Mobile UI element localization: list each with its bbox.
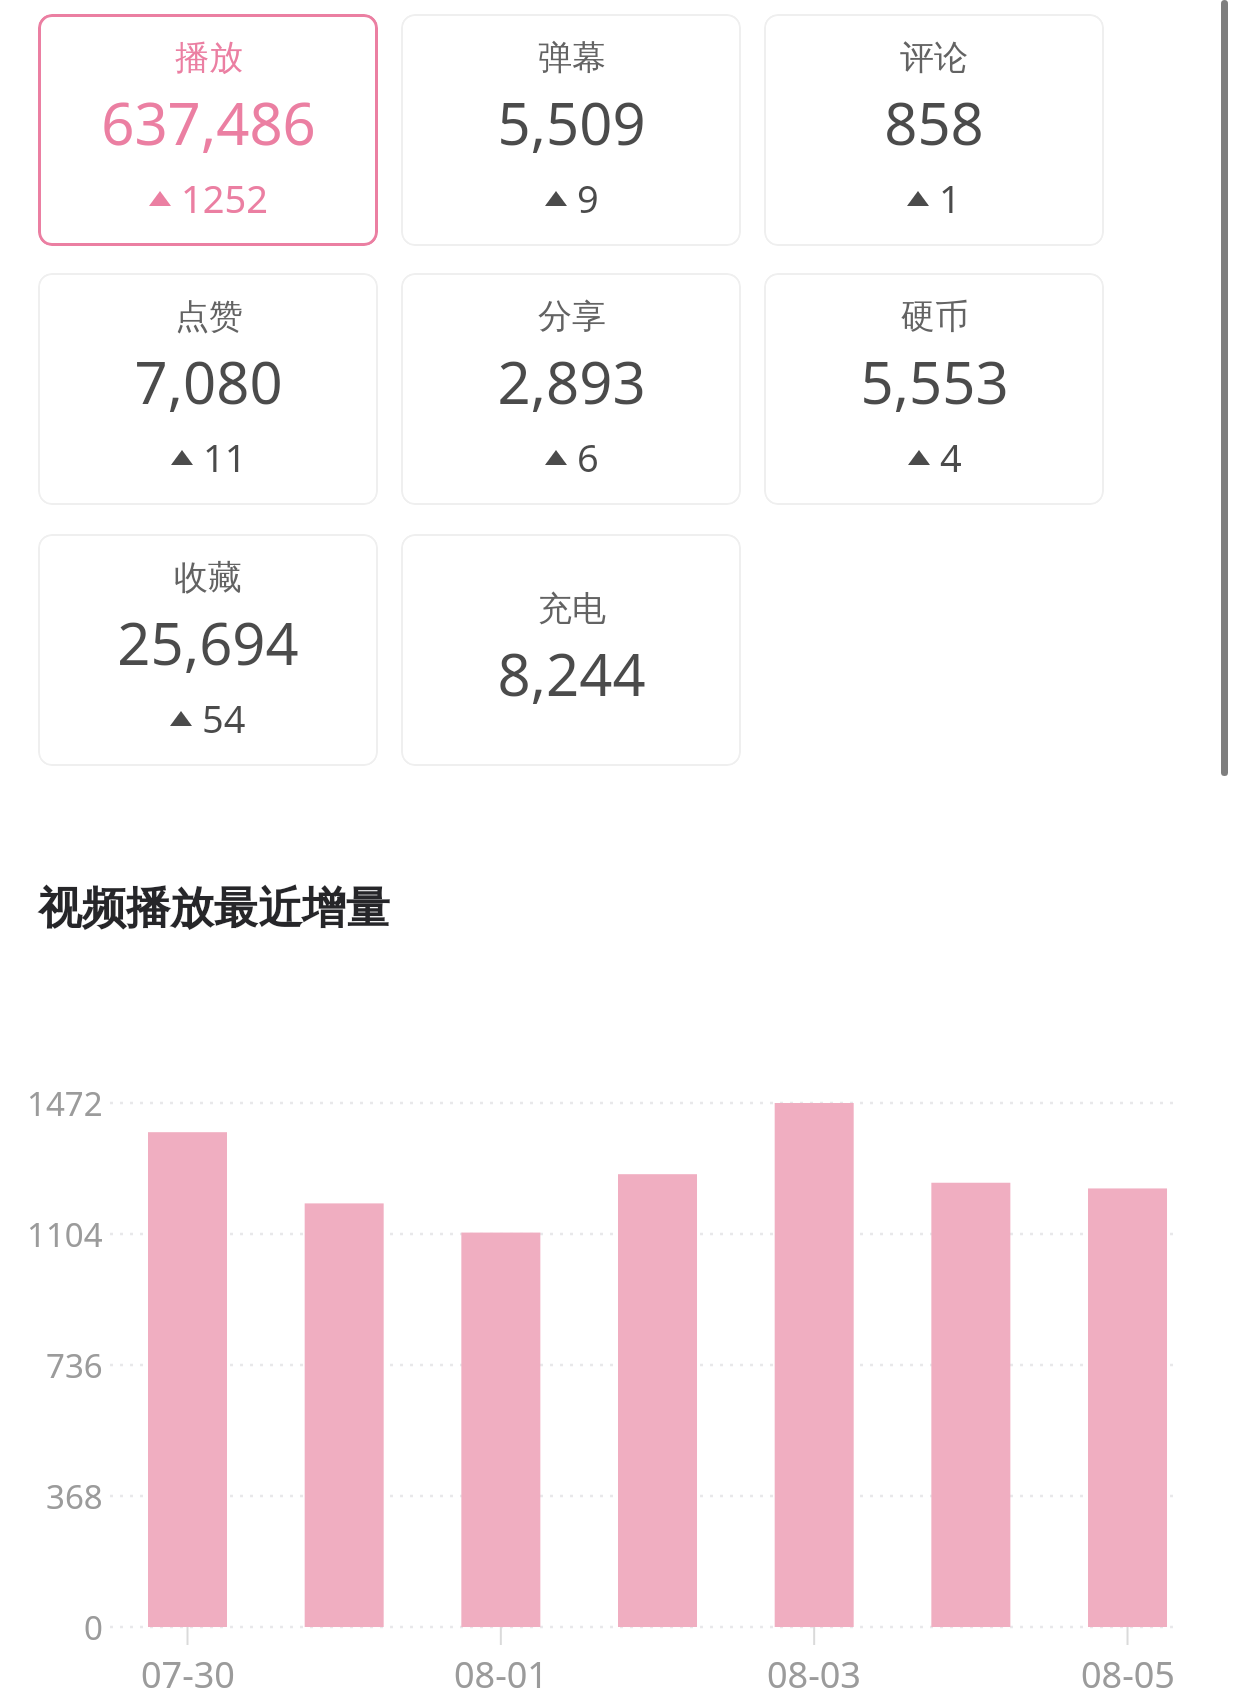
staticText: 1252: [181, 172, 268, 224]
staticText: 07-30: [141, 1650, 235, 1699]
staticText: 1472: [27, 1081, 103, 1125]
staticText: 9: [577, 172, 599, 224]
staticText: 1: [939, 172, 961, 224]
staticText: 25,694: [117, 603, 299, 682]
staticText: 充电: [538, 587, 606, 630]
staticText: 08-03: [767, 1650, 861, 1699]
staticText: 弹幕: [538, 36, 606, 79]
staticText: 2,893: [497, 342, 646, 421]
staticText: 8,244: [497, 634, 646, 713]
staticText: 736: [46, 1343, 103, 1387]
button[interactable]: 分享: [401, 273, 741, 505]
staticText: 分享: [538, 295, 606, 338]
staticText: 5,553: [860, 342, 1009, 421]
button[interactable]: 点赞: [38, 273, 378, 505]
button[interactable]: 充电: [401, 534, 741, 766]
button[interactable]: 硬币: [764, 273, 1104, 505]
button[interactable]: 收藏: [38, 534, 378, 766]
staticText: 4: [940, 431, 962, 483]
button[interactable]: 弹幕: [401, 14, 741, 246]
staticText: 368: [46, 1474, 103, 1518]
staticText: 54: [202, 692, 246, 744]
staticText: 637,486: [101, 83, 316, 162]
staticText: 858: [884, 83, 984, 162]
staticText: 收藏: [174, 556, 242, 599]
staticText: 08-01: [454, 1650, 548, 1699]
staticText: 点赞: [175, 295, 243, 338]
staticText: 硬币: [901, 295, 969, 338]
staticText: 7,080: [134, 342, 283, 421]
staticText: 视频播放最近增量: [38, 881, 390, 936]
staticText: 11: [203, 431, 247, 483]
staticText: 08-05: [1081, 1650, 1175, 1699]
staticText: 评论: [900, 36, 968, 79]
staticText: 播放: [175, 36, 243, 79]
staticText: 6: [577, 431, 599, 483]
button[interactable]: 播放: [38, 14, 378, 246]
staticText: 5,509: [497, 83, 646, 162]
staticText: 1104: [27, 1212, 103, 1256]
button[interactable]: 评论: [764, 14, 1104, 246]
staticText: 0: [84, 1605, 103, 1649]
